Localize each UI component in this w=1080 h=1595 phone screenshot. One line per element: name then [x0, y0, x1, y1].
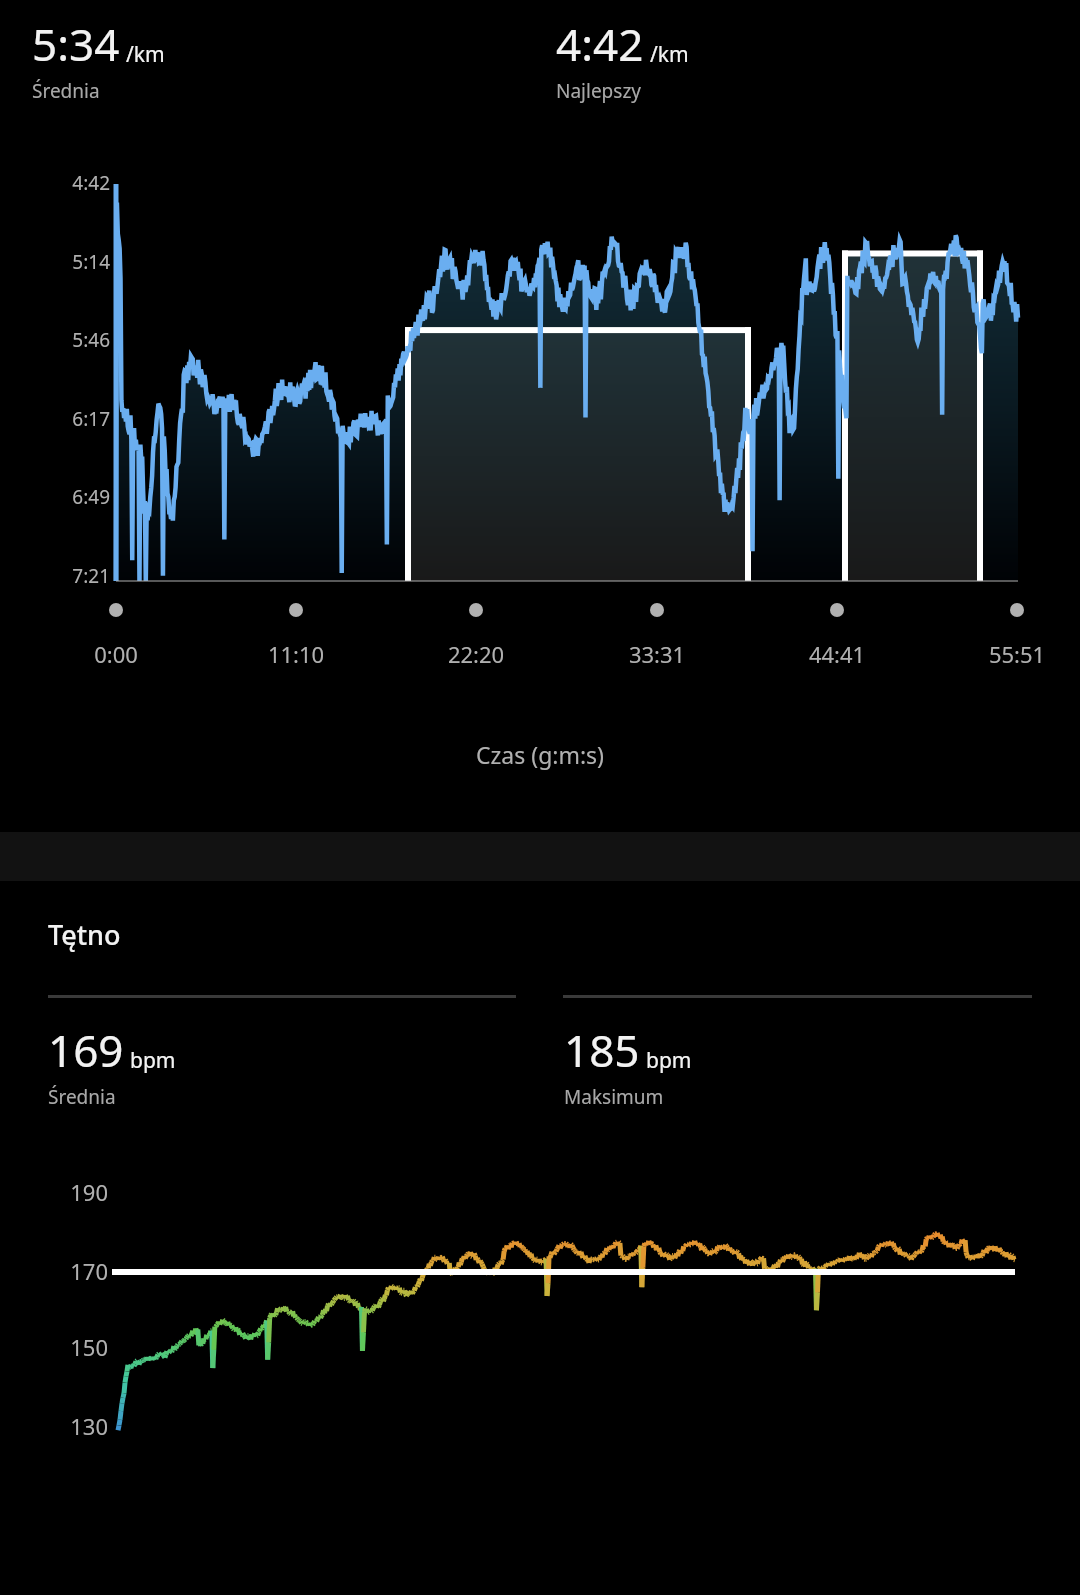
staticText: bpm	[130, 1046, 176, 1075]
button[interactable]: 169	[48, 1020, 564, 1110]
staticText: 22:20	[416, 639, 536, 669]
staticText: 4:42	[40, 170, 110, 196]
staticText: 130	[40, 1411, 108, 1441]
staticText: 4:42	[556, 14, 644, 74]
staticText: 0:00	[56, 639, 176, 669]
staticText: /km	[650, 40, 689, 69]
staticText: 7:21	[40, 563, 110, 589]
staticText: 150	[40, 1332, 108, 1362]
staticText: /km	[126, 40, 165, 69]
staticText: Średnia	[32, 78, 100, 104]
staticText: 190	[40, 1177, 108, 1207]
staticText: 5:34	[32, 14, 120, 74]
staticText: 55:51	[957, 639, 1077, 669]
staticText: bpm	[646, 1046, 692, 1075]
staticText: Najlepszy	[556, 78, 642, 104]
staticText: Czas (g:m:s)	[0, 739, 1080, 770]
staticText: Maksimum	[564, 1084, 664, 1110]
staticText: 11:10	[236, 639, 356, 669]
staticText: Tętno	[48, 916, 121, 953]
button[interactable]: 5:34	[32, 14, 556, 104]
staticText: 5:46	[40, 327, 110, 353]
staticText: 170	[40, 1256, 108, 1286]
button[interactable]: 185	[564, 1020, 1080, 1110]
staticText: 6:49	[40, 484, 110, 510]
staticText: 33:31	[597, 639, 717, 669]
staticText: 185	[564, 1020, 640, 1080]
staticText: 44:41	[777, 639, 897, 669]
staticText: Średnia	[48, 1084, 116, 1110]
staticText: 5:14	[40, 249, 110, 275]
staticText: 169	[48, 1020, 124, 1080]
staticText: 6:17	[40, 406, 110, 432]
button[interactable]: 4:42	[556, 14, 1080, 104]
